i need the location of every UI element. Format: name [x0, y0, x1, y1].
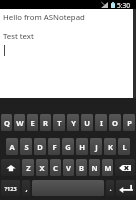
button[interactable]: T: [53, 114, 65, 131]
staticText: L: [122, 142, 127, 152]
button[interactable]: Q: [1, 114, 12, 131]
staticText: S: [24, 142, 29, 152]
button[interactable]: E: [27, 114, 38, 131]
staticText: ,: [25, 183, 28, 193]
button[interactable]: X: [36, 159, 48, 176]
staticText: Z: [26, 163, 31, 173]
button[interactable]: N: [89, 159, 100, 176]
button[interactable]: Shift: [1, 159, 20, 176]
staticText: K: [108, 142, 113, 152]
button[interactable]: S: [20, 138, 32, 155]
staticText: D: [37, 142, 43, 152]
staticText: O: [112, 118, 118, 128]
button[interactable]: O: [109, 114, 121, 131]
staticText: G: [65, 142, 71, 152]
staticText: W: [16, 118, 24, 128]
staticText: 5:30: [117, 1, 131, 10]
staticText: .: [109, 183, 112, 193]
button[interactable]: Y: [67, 114, 79, 131]
staticText: V: [66, 163, 71, 173]
button[interactable]: K: [104, 138, 116, 155]
button[interactable]: W: [14, 114, 25, 131]
button[interactable]: M: [102, 159, 113, 176]
button[interactable]: L: [118, 138, 130, 155]
button[interactable]: I: [95, 114, 107, 131]
button[interactable]: D: [34, 138, 46, 155]
button[interactable]: C: [50, 159, 61, 176]
button[interactable]: .: [106, 180, 114, 196]
button[interactable]: Z: [22, 159, 34, 176]
button[interactable]: V: [63, 159, 74, 176]
staticText: N: [91, 163, 98, 173]
button[interactable]: U: [81, 114, 93, 131]
staticText: A: [9, 142, 15, 152]
staticText: B: [79, 163, 84, 173]
staticText: F: [52, 142, 57, 152]
staticText: E: [30, 118, 35, 128]
staticText: I: [100, 118, 103, 128]
staticText: Q: [4, 118, 10, 128]
button[interactable]: Enter: [116, 180, 135, 196]
staticText: ?123: [4, 185, 17, 192]
button[interactable]: [32, 180, 104, 196]
staticText: R: [43, 118, 48, 128]
staticText: X: [39, 163, 45, 173]
button[interactable]: G: [62, 138, 74, 155]
staticText: P: [127, 118, 132, 128]
button[interactable]: F: [48, 138, 60, 155]
button[interactable]: ?123: [1, 180, 20, 196]
button[interactable]: ,: [22, 180, 30, 196]
staticText: U: [84, 118, 90, 128]
staticText: T: [57, 118, 62, 128]
button[interactable]: P: [123, 114, 135, 131]
button[interactable]: A: [6, 138, 18, 155]
button[interactable]: Backspace: [115, 159, 135, 176]
staticText: J: [95, 142, 98, 152]
staticText: Test text: [3, 31, 34, 42]
staticText: Y: [71, 118, 76, 128]
button[interactable]: R: [40, 114, 51, 131]
button[interactable]: B: [76, 159, 87, 176]
staticText: Hello from ASNotepad: [3, 12, 85, 23]
button[interactable]: J: [90, 138, 102, 155]
button[interactable]: H: [76, 138, 88, 155]
staticText: M: [104, 163, 112, 173]
staticText: C: [53, 163, 58, 173]
staticText: H: [79, 142, 85, 152]
